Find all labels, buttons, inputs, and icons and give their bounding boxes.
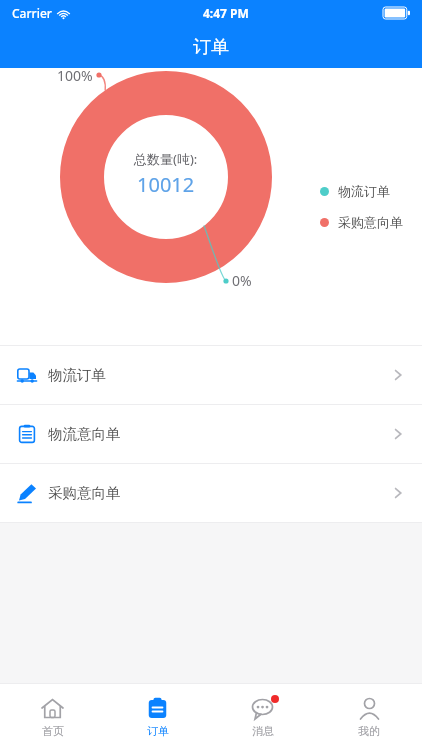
staticText: Carrier <box>12 5 52 21</box>
staticText: 10012 <box>137 171 195 198</box>
button[interactable]: Purchase intent orders <box>0 464 422 522</box>
staticText: 我的 <box>358 724 380 738</box>
staticText: 100% <box>57 66 93 85</box>
staticText: 采购意向单 <box>48 484 121 502</box>
other: Logistics orders <box>17 365 37 385</box>
staticText: 物流意向单 <box>48 425 121 443</box>
button[interactable]: 首页 <box>0 684 105 750</box>
staticText: 物流订单 <box>48 366 106 384</box>
staticText: 订单 <box>193 36 229 59</box>
staticText: 订单 <box>147 724 169 738</box>
staticText: 消息 <box>252 724 274 738</box>
button[interactable]: 订单 <box>105 684 210 750</box>
staticText: 4:47 PM <box>203 5 249 21</box>
button[interactable]: Logistics intent orders <box>0 405 422 463</box>
staticText: 首页 <box>42 724 64 738</box>
other: Logistics intent orders <box>17 424 37 444</box>
button[interactable]: Logistics orders <box>0 346 422 404</box>
button[interactable]: 消息 <box>210 684 316 750</box>
staticText: 物流订单 <box>338 183 390 199</box>
staticText: 0% <box>232 271 252 290</box>
button[interactable]: 我的 <box>316 684 422 750</box>
staticText: 采购意向单 <box>338 214 403 230</box>
staticText: 总数量(吨): <box>134 150 198 168</box>
other: Purchase intent orders <box>17 483 37 503</box>
